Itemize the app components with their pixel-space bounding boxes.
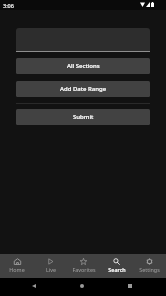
button[interactable]: Search [100, 254, 133, 278]
staticText: Search [108, 266, 126, 273]
button[interactable]: Recent apps [123, 279, 137, 293]
button[interactable]: Favorites [67, 254, 100, 278]
button[interactable]: Home [0, 254, 34, 278]
staticText: Favorites [72, 266, 96, 273]
button[interactable]: Add Date Range [16, 81, 150, 97]
button[interactable]: All Sections [16, 58, 150, 74]
button[interactable]: Live [34, 254, 67, 278]
button[interactable]: Home [75, 279, 89, 293]
staticText: Submit [73, 113, 94, 121]
button[interactable]: Settings [133, 254, 166, 278]
staticText: Home [9, 266, 25, 273]
staticText: Settings [139, 266, 160, 273]
staticText: All Sections [67, 62, 100, 70]
staticText: Add Date Range [60, 85, 107, 93]
button[interactable]: Back [27, 279, 41, 293]
staticText: Live [46, 266, 56, 273]
button[interactable]: Submit [16, 109, 150, 125]
staticText: 3:06 [3, 2, 14, 9]
